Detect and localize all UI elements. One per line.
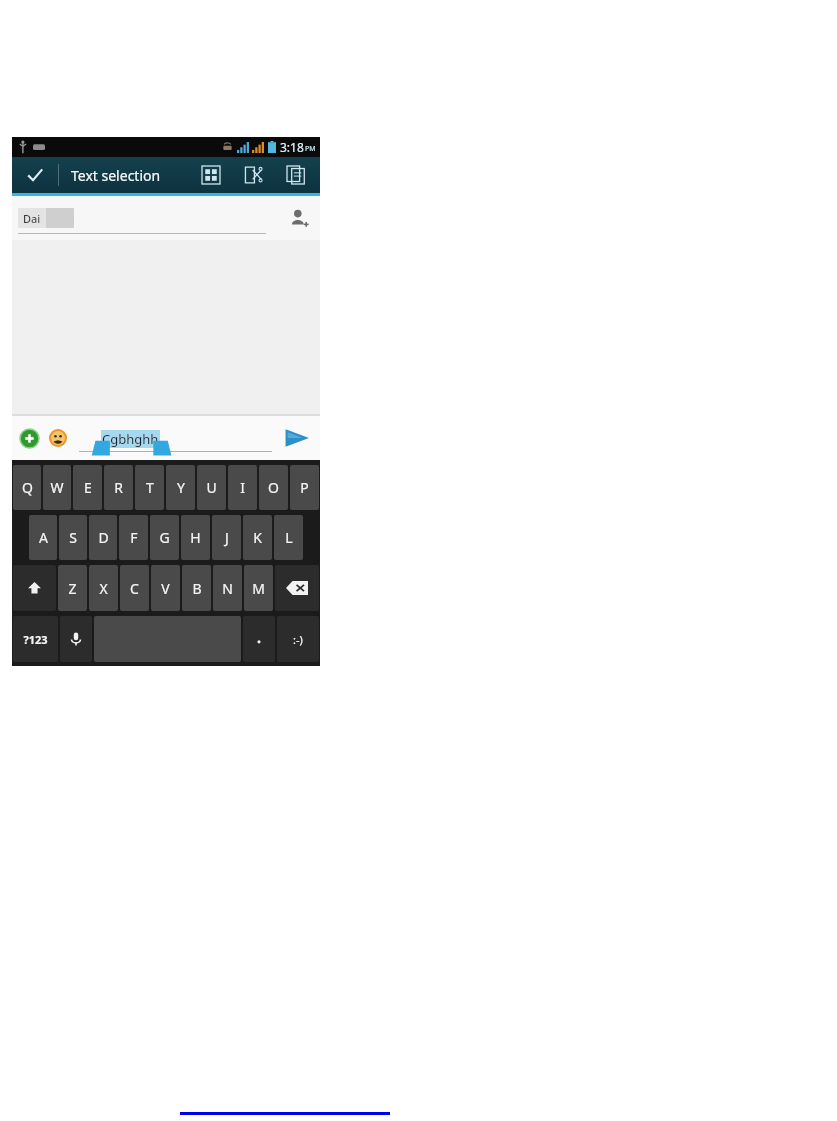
button[interactable]: Voice input <box>60 616 92 662</box>
staticText: L <box>285 528 293 547</box>
button[interactable]: C <box>120 565 149 611</box>
button[interactable]: S <box>59 515 87 560</box>
staticText: P <box>300 478 309 497</box>
staticText: U <box>206 478 217 497</box>
button[interactable]: Copy <box>274 157 318 193</box>
button[interactable]: Emoji <box>45 425 71 451</box>
staticText: R <box>114 478 123 497</box>
button[interactable]: I <box>228 465 257 510</box>
button[interactable]: Select all <box>190 157 232 193</box>
button[interactable]: Send <box>278 419 316 457</box>
button[interactable]: Cgbhghh <box>79 416 272 460</box>
button[interactable]: Backspace <box>275 565 319 611</box>
staticText: T <box>146 478 154 497</box>
staticText: Text selection <box>71 166 161 185</box>
staticText: K <box>253 528 262 547</box>
button[interactable]: U <box>197 465 226 510</box>
button[interactable]: Q <box>13 465 41 510</box>
button[interactable]: A <box>29 515 57 560</box>
staticText: PM <box>305 144 316 154</box>
button[interactable]: P <box>290 465 319 510</box>
staticText: M <box>252 579 265 598</box>
staticText: C <box>130 579 139 598</box>
button[interactable]: :-) <box>277 616 319 662</box>
staticText: F <box>130 528 138 547</box>
button[interactable]: K <box>243 515 272 560</box>
staticText: :-) <box>293 632 303 647</box>
button[interactable]: T <box>135 465 164 510</box>
button[interactable]: N <box>213 565 242 611</box>
button[interactable]: R <box>104 465 133 510</box>
button[interactable]: V <box>151 565 180 611</box>
button[interactable]: J <box>212 515 241 560</box>
button[interactable]: Attach <box>16 425 42 451</box>
button[interactable]: Done <box>12 157 58 193</box>
staticText: Dai <box>23 211 41 226</box>
button[interactable]: F <box>119 515 148 560</box>
button[interactable]: Z <box>58 565 87 611</box>
staticText: Cgbhghh <box>102 430 159 448</box>
button[interactable]: B <box>182 565 211 611</box>
button[interactable]: ?123 <box>13 616 58 662</box>
staticText: Y <box>177 478 185 497</box>
staticText: 3:18 <box>280 139 304 155</box>
button[interactable]: L <box>274 515 303 560</box>
button[interactable]: H <box>181 515 210 560</box>
button[interactable]: G <box>150 515 179 560</box>
staticText: D <box>98 528 109 547</box>
staticText: X <box>99 579 108 598</box>
button[interactable]: Dai <box>18 208 74 228</box>
staticText: ?123 <box>23 632 48 647</box>
staticText: S <box>69 528 77 547</box>
staticText: J <box>225 528 229 547</box>
button[interactable]: W <box>43 465 71 510</box>
staticText: E <box>84 478 92 497</box>
button[interactable]: X <box>89 565 118 611</box>
button[interactable]: Period <box>243 616 275 662</box>
staticText: O <box>268 478 279 497</box>
button[interactable]: Shift <box>13 565 56 611</box>
staticText: B <box>192 579 202 598</box>
staticText: V <box>161 579 170 598</box>
staticText: I <box>240 478 245 497</box>
button[interactable]: O <box>259 465 288 510</box>
button[interactable]: M <box>244 565 273 611</box>
button[interactable]: D <box>89 515 117 560</box>
staticText: W <box>50 478 64 497</box>
staticText: Z <box>68 579 77 598</box>
staticText: Q <box>22 478 33 497</box>
button[interactable]: E <box>73 465 102 510</box>
staticText: H <box>190 528 201 547</box>
staticText: N <box>222 579 233 598</box>
staticText: G <box>159 528 170 547</box>
staticText: A <box>39 528 48 547</box>
button[interactable]: Add contact <box>282 201 316 235</box>
button[interactable]: Y <box>166 465 195 510</box>
button[interactable]: Cut <box>232 157 274 193</box>
